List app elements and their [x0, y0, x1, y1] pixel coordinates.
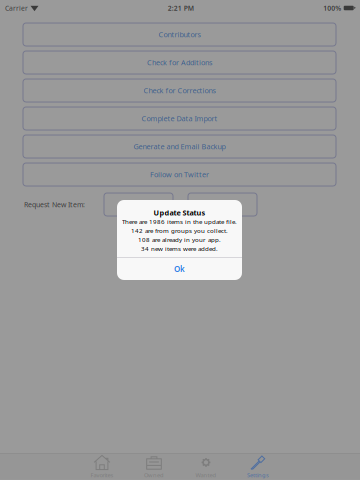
staticText: Generate and Email Backup — [133, 142, 225, 151]
button[interactable]: Settings — [232, 454, 284, 480]
staticText: Settings — [247, 471, 269, 479]
staticText: Update Status — [153, 208, 205, 218]
button[interactable]: Wanted — [180, 454, 232, 480]
staticText: Check for Corrections — [143, 86, 215, 95]
staticText: Favorites — [90, 471, 113, 479]
staticText: Complete Data Import — [141, 114, 217, 123]
staticText: Wanted — [195, 471, 216, 479]
staticText: 108 are already in your app. — [138, 235, 221, 244]
button[interactable]: Check for Additions — [23, 51, 336, 74]
button[interactable]: Send request — [188, 193, 257, 216]
button[interactable]: Follow on Twitter — [23, 163, 336, 186]
button[interactable]: Check for Corrections — [23, 79, 336, 102]
staticText: Request New Item: — [24, 200, 85, 209]
staticText: 100% — [323, 3, 341, 13]
staticText: Owned — [144, 471, 164, 479]
button[interactable]: Complete Data Import — [23, 107, 336, 130]
staticText: Ok — [174, 263, 185, 274]
button[interactable]: Contributors — [23, 23, 336, 46]
staticText: 2:21 PM — [168, 3, 194, 13]
staticText: 142 are from groups you collect. — [131, 226, 228, 235]
staticText: Contributors — [158, 30, 200, 39]
staticText: Follow on Twitter — [150, 170, 209, 179]
button[interactable]: Choose item type — [104, 193, 173, 216]
button[interactable]: Favorites — [76, 454, 128, 480]
staticText: Check for Additions — [147, 58, 212, 67]
button[interactable]: Generate and Email Backup — [23, 135, 336, 158]
staticText: Carrier — [5, 3, 28, 13]
staticText: There are 1986 items in the update file. — [122, 217, 237, 226]
button[interactable]: Owned — [128, 454, 180, 480]
button[interactable]: Ok — [117, 258, 242, 280]
staticText: 34 new items were added. — [141, 244, 218, 253]
